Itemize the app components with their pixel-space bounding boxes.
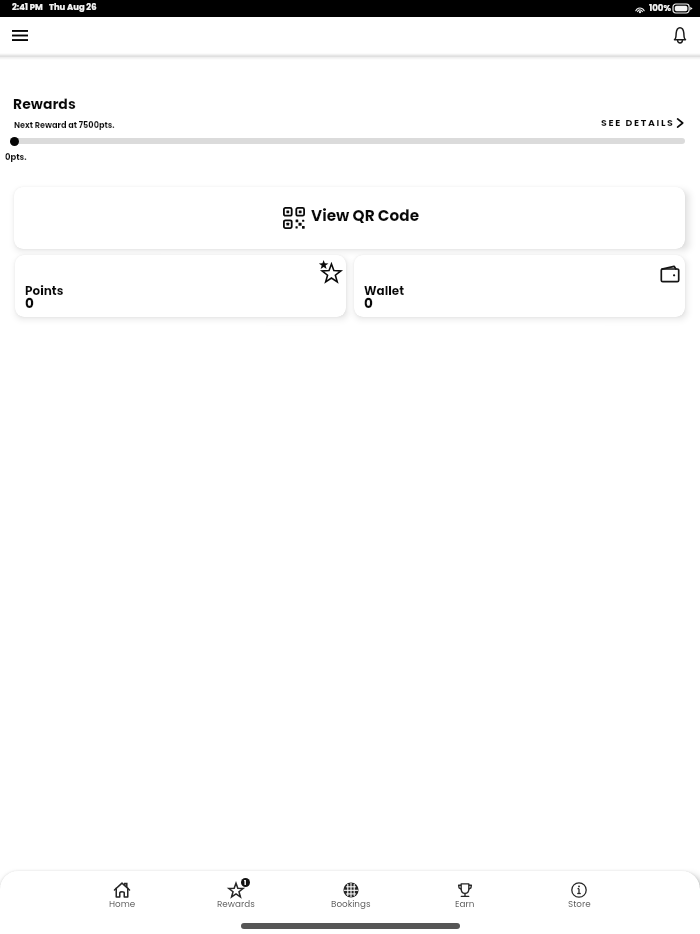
button[interactable]: Store [522,882,636,910]
staticText: Next Reward at 7500pts. [14,119,115,130]
button[interactable]: Earn [408,882,522,910]
button[interactable]: Bookings [294,882,408,910]
button[interactable]: Wallet [354,255,685,317]
button[interactable]: Open navigation menu [4,20,35,51]
staticText: 0 [25,294,34,313]
button[interactable]: Notifications [664,19,696,51]
staticText: View QR Code [311,205,420,226]
staticText: Rewards [13,94,76,114]
button[interactable]: 1 [179,882,293,910]
button[interactable]: SEE DETAILS [601,116,683,129]
staticText: 2:41 PM [12,1,43,13]
staticText: Wallet [364,282,405,299]
staticText: Bookings [331,898,371,910]
staticText: Points [25,282,64,299]
staticText: Store [568,898,591,910]
staticText: SEE DETAILS [601,116,675,129]
staticText: 100% [649,2,671,14]
staticText: Earn [455,898,475,910]
staticText: Thu Aug 26 [49,1,97,13]
staticText: Rewards [217,898,255,910]
staticText: Home [109,898,136,910]
button[interactable]: Home [65,882,179,910]
staticText: 1 [244,879,247,887]
staticText: 0pts. [5,151,27,163]
staticText: 0 [364,294,373,313]
button[interactable]: View QR Code [14,187,685,249]
button[interactable]: Points [15,255,346,317]
